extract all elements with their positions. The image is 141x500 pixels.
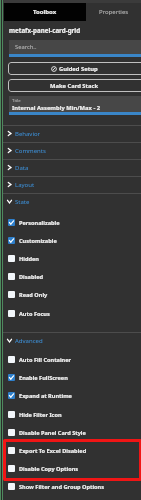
staticText: Hidden xyxy=(19,255,39,263)
staticText: Comments xyxy=(15,147,46,155)
button[interactable]: Layout xyxy=(0,176,141,193)
staticText: Export To Excel Disabled xyxy=(19,447,87,455)
staticText: Advanced xyxy=(15,337,43,345)
staticText: Auto Focus xyxy=(19,310,50,318)
button[interactable]: Export To Excel Disabled xyxy=(8,441,141,460)
button[interactable]: Properties xyxy=(86,3,141,21)
button[interactable]: Make Card Stack xyxy=(8,79,141,92)
staticText: Enable FullScreen xyxy=(19,374,68,382)
button[interactable]: Disable Panel Card Style xyxy=(8,423,141,442)
staticText: Disable Panel Card Style xyxy=(19,429,86,437)
staticText: Guided Setup xyxy=(59,65,98,73)
button[interactable]: Enable FullScreen xyxy=(8,368,141,387)
button[interactable]: Guided Setup xyxy=(8,62,141,75)
button[interactable]: Show Filter and Group Options xyxy=(8,477,141,496)
button[interactable]: Read Only xyxy=(8,285,141,304)
button[interactable]: Data xyxy=(0,159,141,176)
staticText: Disabled xyxy=(19,273,44,281)
button[interactable]: Toolbox xyxy=(4,3,86,21)
button[interactable]: Hide Filter Icon xyxy=(8,405,141,424)
staticText: Search.. xyxy=(15,43,37,51)
button[interactable]: Personalizable xyxy=(8,213,141,232)
button[interactable]: Disable Copy Options xyxy=(8,459,141,478)
button[interactable]: Auto Focus xyxy=(8,304,141,323)
staticText: Hide Filter Icon xyxy=(19,411,62,419)
staticText: Behavior xyxy=(15,130,41,138)
staticText: Disable Copy Options xyxy=(19,465,79,473)
staticText: Layout xyxy=(15,181,35,189)
staticText: Data xyxy=(15,164,29,172)
staticText: Expand at Runtime xyxy=(19,392,72,400)
button[interactable]: Behavior xyxy=(0,125,141,142)
staticText: Show Filter and Group Options xyxy=(19,483,105,491)
staticText: Internal Assembly Min/Max - 2 xyxy=(12,104,101,112)
staticText: metafx-panel-card-grid xyxy=(9,26,81,34)
button[interactable]: Hidden xyxy=(8,249,141,268)
staticText: State xyxy=(15,198,30,206)
button[interactable]: Customizable xyxy=(8,231,141,250)
button[interactable]: State xyxy=(0,193,141,210)
button[interactable]: Auto Fill Container xyxy=(8,350,141,369)
staticText: Customizable xyxy=(19,237,57,245)
button[interactable]: Expand at Runtime xyxy=(8,386,141,405)
staticText: Title xyxy=(12,97,21,103)
staticText: Properties xyxy=(99,8,129,16)
staticText: Auto Fill Container xyxy=(19,356,72,364)
button[interactable]: Comments xyxy=(0,142,141,159)
button[interactable]: Title xyxy=(12,96,141,112)
staticText: Personalizable xyxy=(19,219,60,227)
button[interactable]: Search.. xyxy=(15,40,141,54)
button[interactable]: Advanced xyxy=(0,332,141,349)
staticText: Toolbox xyxy=(33,8,57,16)
button[interactable]: Disabled xyxy=(8,267,141,286)
staticText: Make Card Stack xyxy=(50,82,99,90)
staticText: Read Only xyxy=(19,291,48,299)
